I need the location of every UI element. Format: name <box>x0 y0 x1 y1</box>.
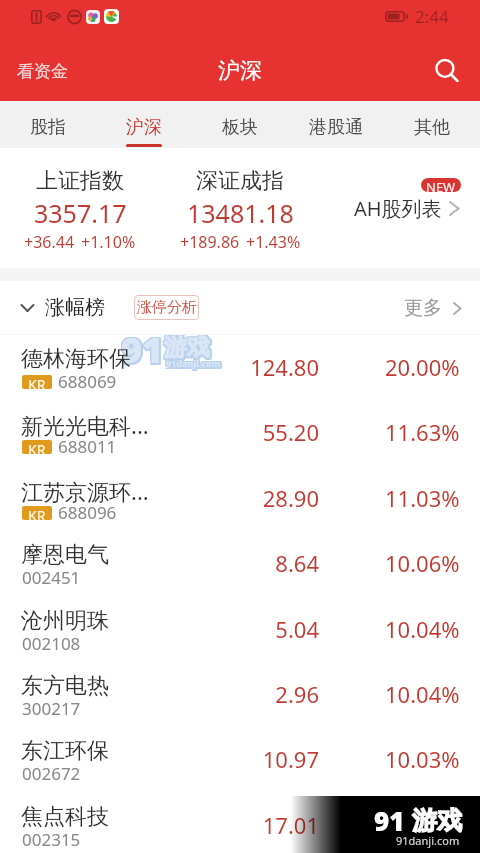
staticText: 涨停分析 <box>137 298 197 317</box>
staticText: 沧州明珠 <box>21 607 181 635</box>
staticText: 摩恩电气 <box>21 541 181 569</box>
staticText: +36.44 <box>24 231 75 253</box>
staticText: NEW <box>426 178 456 192</box>
button[interactable]: 深证成指 <box>160 148 320 268</box>
staticText: 其他 <box>414 116 450 139</box>
staticText: 91 <box>123 325 166 374</box>
staticText: 更多 <box>404 296 442 320</box>
button[interactable]: 看资金 <box>0 53 80 90</box>
button[interactable]: 涨停分析 <box>134 295 199 320</box>
button[interactable]: 东江环保 <box>0 727 480 791</box>
button[interactable]: 江苏京源环... <box>0 466 480 530</box>
staticText: 10.97 <box>199 744 319 774</box>
staticText: 91danji.com <box>168 359 223 371</box>
staticText: 8.64 <box>199 548 319 578</box>
staticText: 91 <box>120 327 163 376</box>
button[interactable]: 焦点科技 <box>0 793 480 853</box>
staticText: 002451 <box>22 566 81 589</box>
button[interactable]: 股指 <box>0 101 96 148</box>
staticText: 游戏 <box>164 335 210 364</box>
staticText: 688096 <box>58 501 117 524</box>
button[interactable]: 上证指数 <box>0 148 160 268</box>
staticText: 91danji.com <box>396 833 460 848</box>
staticText: +189.86 <box>180 231 240 253</box>
button[interactable]: 其他 <box>384 101 480 148</box>
staticText: 游戏 <box>166 333 212 362</box>
staticText: 10.04% <box>385 614 460 644</box>
staticText: 91 <box>120 324 163 373</box>
staticText: 游戏 <box>163 335 209 364</box>
button[interactable]: 德林海环保 <box>0 335 480 399</box>
staticText: 东方电热 <box>21 672 181 700</box>
staticText: 13481.18 <box>187 196 294 230</box>
button[interactable]: 东方电热 <box>0 662 480 726</box>
staticText: 港股通 <box>309 116 363 139</box>
staticText: 江苏京源环... <box>21 476 181 506</box>
staticText: 沪深 <box>218 57 262 85</box>
button[interactable]: 沧州明珠 <box>0 597 480 661</box>
staticText: 10.06% <box>385 548 460 578</box>
staticText: 688069 <box>58 370 117 393</box>
staticText: 91danji.com <box>168 357 223 369</box>
button[interactable]: AH股列表 <box>320 148 480 268</box>
button[interactable]: 港股通 <box>288 101 384 148</box>
staticText: 28.90 <box>199 483 319 513</box>
staticText: 11.63% <box>385 417 460 447</box>
staticText: 深证成指 <box>196 167 284 195</box>
button[interactable]: 摩恩电气 <box>0 531 480 595</box>
staticText: 20.00% <box>385 352 460 382</box>
staticText: +1.43% <box>246 231 301 253</box>
staticText: 游戏 <box>412 805 462 836</box>
staticText: 看资金 <box>17 61 68 82</box>
staticText: 焦点科技 <box>21 803 181 831</box>
staticText: 91danji.com <box>166 359 221 371</box>
staticText: 91 <box>374 803 405 838</box>
button[interactable]: Search <box>432 56 462 86</box>
staticText: 91danji.com <box>165 356 220 368</box>
staticText: 10.02% <box>385 810 460 840</box>
staticText: 91 <box>120 325 163 374</box>
staticText: 5.04 <box>199 614 319 644</box>
staticText: 上证指数 <box>36 167 124 195</box>
staticText: 股指 <box>30 116 66 139</box>
staticText: 002672 <box>22 762 81 785</box>
button[interactable]: 更多 <box>404 296 480 320</box>
staticText: 3357.17 <box>34 196 127 230</box>
staticText: 德林海环保 <box>21 345 181 373</box>
staticText: 10.04% <box>385 679 460 709</box>
staticText: 91 <box>123 327 166 376</box>
button[interactable]: 沪深 <box>96 101 192 148</box>
staticText: 91danji.com <box>166 357 221 369</box>
staticText: KR <box>28 440 46 454</box>
staticText: 游戏 <box>166 332 212 361</box>
staticText: 91danji.com <box>165 359 220 371</box>
staticText: 新光光电科... <box>21 410 181 440</box>
staticText: 91 <box>123 324 166 373</box>
staticText: 游戏 <box>164 332 210 361</box>
staticText: KR <box>28 375 46 389</box>
staticText: 涨幅榜 <box>45 295 105 320</box>
staticText: 91danji.com <box>165 357 220 369</box>
staticText: 2:44 <box>415 5 449 28</box>
staticText: 2.96 <box>199 679 319 709</box>
staticText: 11.03% <box>385 483 460 513</box>
staticText: 300217 <box>22 697 81 720</box>
staticText: 91 <box>121 324 164 373</box>
staticText: 002315 <box>22 828 81 851</box>
button[interactable]: 新光光电科... <box>0 400 480 464</box>
staticText: 688011 <box>58 435 117 458</box>
staticText: 10.03% <box>385 744 460 774</box>
staticText: 沪深 <box>126 116 162 139</box>
button[interactable]: 板块 <box>192 101 288 148</box>
staticText: 91danji.com <box>166 357 221 369</box>
staticText: 游戏 <box>164 333 210 362</box>
staticText: 游戏 <box>163 332 209 361</box>
staticText: KR <box>28 506 46 520</box>
staticText: 板块 <box>222 116 258 139</box>
staticText: +1.10% <box>81 231 136 253</box>
staticText: 17.01 <box>199 810 319 840</box>
staticText: 91 <box>121 327 164 376</box>
staticText: AH股列表 <box>354 195 442 222</box>
staticText: 东江环保 <box>21 737 181 765</box>
staticText: 124.80 <box>199 352 319 382</box>
